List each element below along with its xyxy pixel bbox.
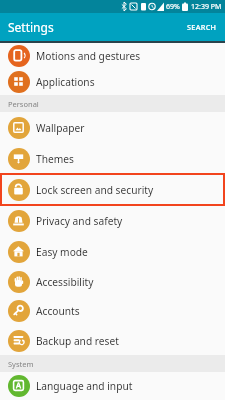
staticText: Applications — [36, 75, 95, 89]
staticText: SEARCH — [187, 22, 217, 32]
staticText: Wallpaper — [36, 121, 85, 135]
button[interactable]: Easy mode — [0, 236, 225, 267]
button[interactable]: Backup and reset — [0, 326, 225, 355]
staticText: Backup and reset — [36, 334, 119, 348]
button[interactable]: Privacy and safety — [0, 206, 225, 236]
button[interactable]: Accounts — [0, 296, 225, 326]
button[interactable]: Wallpaper — [0, 112, 225, 144]
staticText: Privacy and safety — [36, 214, 123, 228]
staticText: 12:39 PM — [191, 2, 222, 12]
button[interactable]: Language and input — [0, 372, 225, 400]
staticText: Language and input — [36, 379, 133, 393]
staticText: 69% — [166, 2, 180, 12]
staticText: Accounts — [36, 304, 80, 318]
staticText: Easy mode — [36, 245, 88, 259]
staticText: Settings — [8, 19, 54, 35]
staticText: Lock screen and security — [36, 183, 154, 197]
staticText: Personal — [8, 99, 39, 109]
button[interactable]: Lock screen and security — [0, 173, 225, 206]
staticText: System — [8, 359, 34, 369]
button[interactable]: Motions and gestures — [0, 43, 225, 68]
button[interactable]: Applications — [0, 68, 225, 95]
button[interactable]: Accessibility — [0, 267, 225, 296]
button[interactable]: Themes — [0, 144, 225, 173]
button[interactable]: SEARCH — [187, 22, 217, 32]
staticText: Themes — [36, 152, 74, 166]
staticText: Accessibility — [36, 275, 94, 289]
staticText: Motions and gestures — [36, 49, 141, 63]
